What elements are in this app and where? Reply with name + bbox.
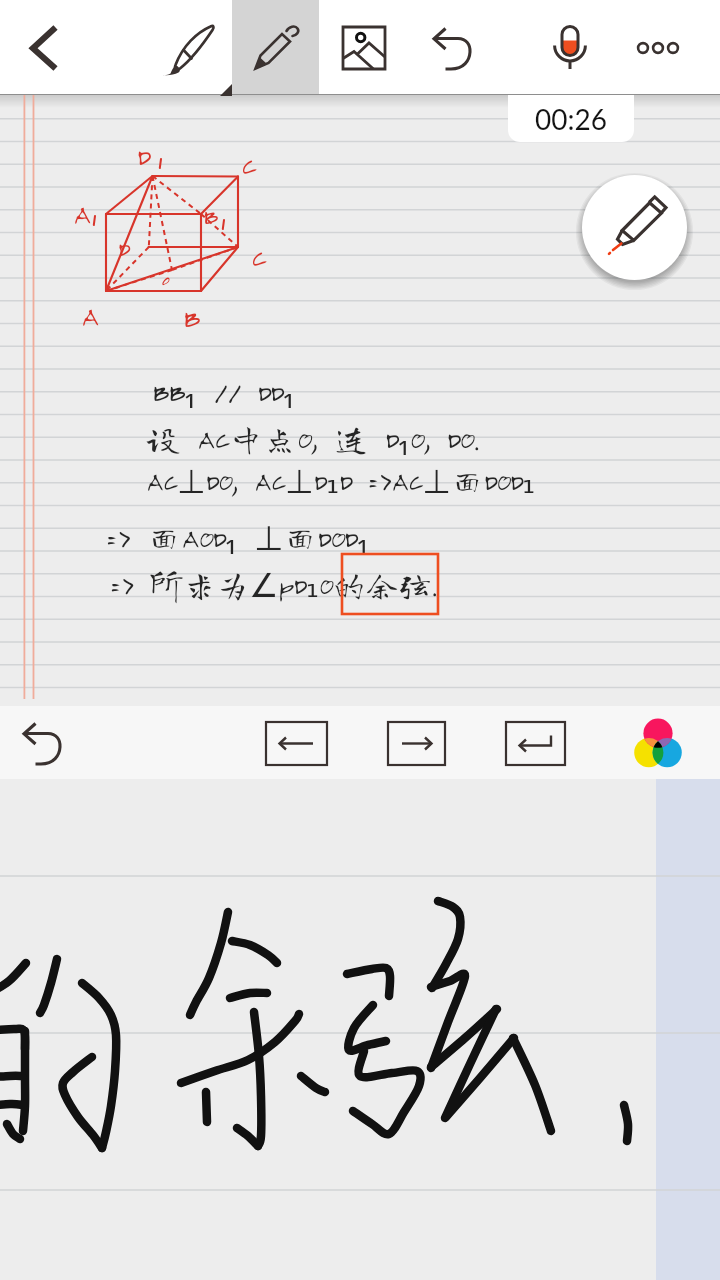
staticText: D xyxy=(137,138,150,172)
staticText: C xyxy=(251,239,266,273)
button[interactable]: Back xyxy=(5,0,85,95)
button[interactable]: Brush pen xyxy=(150,0,230,95)
button[interactable]: 00:26 xyxy=(508,95,634,142)
button[interactable]: Pen tool xyxy=(582,175,687,280)
staticText: C xyxy=(241,147,256,181)
button[interactable]: Voice record xyxy=(530,0,610,95)
staticText: B xyxy=(183,300,200,334)
button[interactable]: Enter xyxy=(506,722,565,765)
staticText: B xyxy=(203,200,218,230)
button[interactable]: Undo xyxy=(413,0,493,95)
staticText: A xyxy=(73,196,91,230)
staticText: 00:26 xyxy=(535,102,607,136)
staticText: o xyxy=(161,268,170,290)
staticText: D xyxy=(118,232,130,262)
button[interactable]: Colour picker xyxy=(626,706,690,779)
button[interactable]: Right arrow xyxy=(388,722,445,765)
staticText: A xyxy=(81,298,99,332)
staticText: => 面AOD₁ ⊥面DOD₁ xyxy=(106,514,369,560)
button[interactable]: Left arrow xyxy=(266,722,327,765)
button[interactable]: Pencil tool selected xyxy=(232,0,319,95)
staticText: 设 AC中点O, 连 D₁O, DO. xyxy=(146,415,478,461)
button[interactable]: Undo xyxy=(11,706,75,779)
button[interactable]: Pencil xyxy=(235,0,315,95)
button[interactable]: More options xyxy=(618,0,698,95)
staticText: AC⊥DO, AC⊥D₁D =>AC⊥面DOD₁ xyxy=(146,462,536,500)
staticText: BB₁ // DD₁ xyxy=(152,368,295,414)
staticText: => 所求为∠pD₁O的余弦. xyxy=(110,566,436,604)
button[interactable]: Insert image xyxy=(324,0,404,95)
